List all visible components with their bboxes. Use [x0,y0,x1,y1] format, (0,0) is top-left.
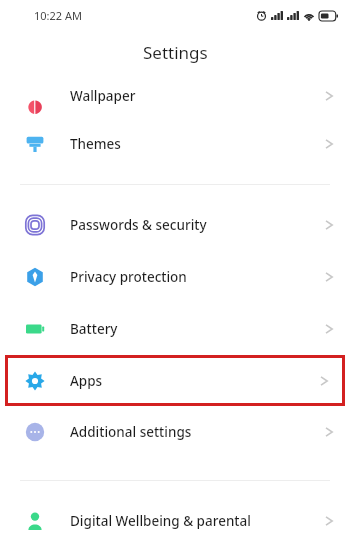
button[interactable]: Passwords & security [0,199,350,251]
button[interactable]: Wallpaper [0,74,350,118]
staticText: Privacy protection [70,268,187,286]
button[interactable]: Digital Wellbeing & parental [0,503,350,538]
button[interactable]: Additional settings [0,406,350,458]
button[interactable]: Apps [5,355,345,406]
staticText: Battery [70,320,118,338]
staticText: Passwords & security [70,216,207,234]
staticText: 10:22 AM [34,8,82,23]
staticText: Themes [70,135,121,153]
staticText: Digital Wellbeing & parental [70,512,251,530]
staticText: Apps [70,372,103,390]
button[interactable]: Privacy protection [0,251,350,303]
button[interactable]: Battery [0,303,350,355]
staticText: Additional settings [70,423,192,441]
staticText: Wallpaper [70,87,136,105]
staticText: Settings [143,41,208,64]
button[interactable]: Themes [0,118,350,170]
